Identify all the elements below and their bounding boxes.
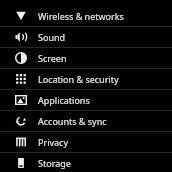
button[interactable]: Sound bbox=[0, 27, 172, 47]
staticText: Location & security bbox=[38, 73, 119, 85]
staticText: Wireless & networks bbox=[38, 10, 124, 22]
staticText: Screen bbox=[38, 52, 67, 64]
staticText: Accounts & sync bbox=[38, 115, 107, 127]
button[interactable]: Privacy bbox=[0, 132, 172, 152]
staticText: Privacy bbox=[38, 136, 69, 148]
staticText: Storage bbox=[38, 157, 71, 169]
button[interactable]: Screen bbox=[0, 48, 172, 68]
button[interactable]: Location & security bbox=[0, 69, 172, 89]
button[interactable]: Accounts & sync bbox=[0, 111, 172, 131]
staticText: Applications bbox=[38, 94, 90, 106]
button[interactable]: Applications bbox=[0, 90, 172, 110]
staticText: Sound bbox=[38, 31, 66, 43]
button[interactable]: Wireless & networks bbox=[0, 0, 172, 26]
button[interactable]: Storage bbox=[0, 153, 172, 172]
